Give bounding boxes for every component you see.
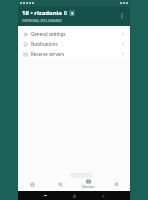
button[interactable]: Profile xyxy=(102,177,130,191)
button[interactable]: Back xyxy=(101,194,105,198)
button[interactable]: Home xyxy=(72,194,76,198)
button[interactable]: Notifications xyxy=(20,39,128,49)
staticText: 0 xyxy=(64,10,67,17)
button[interactable]: Home xyxy=(18,177,46,191)
button[interactable]: Services xyxy=(74,177,102,191)
staticText: 18 • rizadania xyxy=(22,9,62,17)
button[interactable]: General settings xyxy=(20,29,128,39)
staticText: Servicios xyxy=(82,185,95,189)
staticText: Reserve servers xyxy=(31,51,121,57)
button[interactable]: Reserve servers xyxy=(20,49,128,59)
staticText: 3 xyxy=(71,11,74,16)
button[interactable]: Search xyxy=(46,177,74,191)
staticText: GENERAL DELGRANO xyxy=(22,18,62,23)
button[interactable]: Recents xyxy=(43,194,47,197)
button[interactable]: More options xyxy=(116,10,128,22)
staticText: Notifications xyxy=(31,41,121,47)
button[interactable]: Badge xyxy=(69,10,75,16)
staticText: General settings xyxy=(31,31,121,37)
